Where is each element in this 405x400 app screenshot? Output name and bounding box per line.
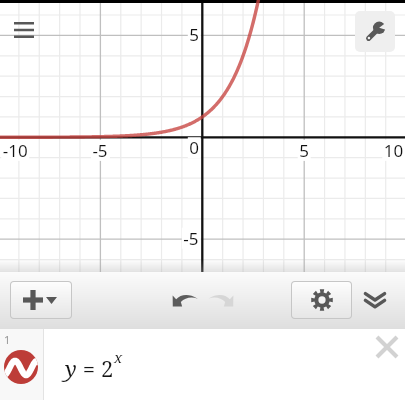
staticText: y [65, 353, 77, 383]
button[interactable]: Delete expression [372, 332, 402, 362]
button[interactable]: Redo [203, 286, 239, 314]
button[interactable]: Add expression [11, 282, 71, 318]
button[interactable]: Expression color [0, 329, 43, 400]
button[interactable]: Graph tools [355, 11, 395, 52]
staticText: 2 [101, 353, 114, 383]
button[interactable]: Settings [292, 282, 351, 318]
button[interactable]: Collapse keypad [357, 285, 393, 315]
staticText: 1 [4, 332, 11, 347]
staticText: x [114, 347, 123, 367]
button[interactable]: Undo [167, 286, 203, 314]
staticText: = [77, 353, 101, 383]
button[interactable]: Menu [8, 12, 39, 48]
